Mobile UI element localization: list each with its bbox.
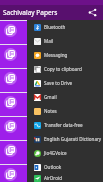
staticText: Sachivalay Papers [3, 8, 58, 17]
button[interactable] [0, 93, 103, 116]
button[interactable]: AirDroid [27, 174, 103, 182]
staticText: English Gujarati Dictionary [44, 136, 102, 142]
staticText: Gmail [44, 94, 57, 100]
button[interactable] [0, 117, 103, 140]
button[interactable] [0, 21, 103, 44]
button[interactable] [0, 141, 103, 164]
staticText: Messaging [44, 52, 68, 58]
button[interactable]: Outlook [27, 160, 103, 174]
button[interactable]: Notes [27, 104, 103, 118]
staticText: Mail [44, 38, 54, 44]
staticText: Bluetooth [44, 24, 66, 30]
staticText: Jio4GVoice [44, 150, 67, 156]
staticText: Notes [44, 108, 57, 114]
button[interactable]: Share [88, 8, 97, 17]
staticText: Outlook [44, 164, 62, 170]
button[interactable]: Mail [27, 34, 103, 48]
button[interactable]: Bluetooth [27, 20, 103, 34]
staticText: Copy to clipboard [44, 66, 82, 72]
button[interactable] [0, 165, 103, 182]
staticText: Save to Drive [44, 80, 73, 86]
staticText: Transfer data-free [44, 122, 83, 128]
button[interactable]: Gmail [27, 90, 103, 104]
button[interactable]: Save to Drive [27, 76, 103, 90]
button[interactable]: Transfer data-free [27, 118, 103, 132]
button[interactable]: Copy to clipboard [27, 62, 103, 76]
staticText: AirDroid [44, 175, 62, 181]
button[interactable]: Jio4GVoice [27, 146, 103, 160]
button[interactable]: English Gujarati Dictionary [27, 132, 103, 146]
button[interactable] [0, 45, 103, 68]
button[interactable]: Messaging [27, 48, 103, 62]
button[interactable] [0, 69, 103, 92]
